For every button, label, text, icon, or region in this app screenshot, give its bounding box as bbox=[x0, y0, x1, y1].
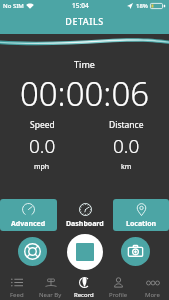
button[interactable]: Feed bbox=[0, 272, 33, 300]
staticText: 18% bbox=[136, 2, 148, 10]
button[interactable]: More bbox=[135, 272, 169, 300]
staticText: Record bbox=[74, 291, 94, 299]
staticText: 00:00:06 bbox=[0, 71, 169, 116]
staticText: Distance bbox=[109, 119, 144, 131]
button[interactable]: Advanced bbox=[0, 199, 57, 231]
staticText: Location bbox=[126, 219, 157, 229]
staticText: Time bbox=[0, 58, 169, 70]
button[interactable]: Record bbox=[67, 272, 101, 300]
button[interactable]: Camera bbox=[121, 237, 150, 266]
staticText: More bbox=[145, 291, 160, 299]
button[interactable]: Dashboard bbox=[57, 199, 113, 231]
staticText: Profile bbox=[109, 291, 128, 299]
staticText: 0.0 bbox=[29, 133, 56, 159]
staticText: 0.0 bbox=[113, 133, 140, 159]
button[interactable]: Compass bbox=[18, 237, 47, 266]
button[interactable]: Near By bbox=[33, 272, 67, 300]
staticText: km bbox=[121, 162, 132, 172]
button[interactable]: Stop recording bbox=[67, 234, 103, 270]
button[interactable]: Profile bbox=[101, 272, 135, 300]
staticText: Dashboard bbox=[66, 219, 104, 229]
staticText: Near By bbox=[39, 291, 62, 299]
staticText: Speed bbox=[30, 119, 55, 131]
staticText: DETAILS bbox=[0, 15, 169, 27]
staticText: 15:04 bbox=[72, 1, 89, 10]
staticText: Advanced bbox=[11, 219, 46, 229]
staticText: No SIM bbox=[3, 2, 24, 10]
button[interactable]: Location bbox=[113, 199, 169, 231]
staticText: mph bbox=[34, 162, 50, 172]
staticText: Feed bbox=[10, 291, 24, 299]
